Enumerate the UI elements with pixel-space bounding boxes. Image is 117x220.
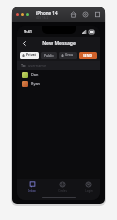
staticText: Circles — [58, 189, 67, 193]
staticText: SEND — [83, 53, 93, 58]
button[interactable]: Settings — [82, 11, 89, 18]
button[interactable]: Back — [20, 39, 29, 48]
staticText: Inbox — [28, 189, 36, 193]
staticText: New Message — [42, 40, 76, 47]
button[interactable]: Zoom window — [26, 13, 29, 16]
staticText: 9:41 — [24, 29, 32, 34]
button[interactable]: Inbox — [17, 179, 47, 195]
staticText: Dan — [31, 72, 39, 77]
button[interactable]: Login — [77, 179, 100, 195]
staticText: To: — [21, 63, 28, 68]
button[interactable]: Ryan — [17, 79, 100, 88]
staticText: Ryan — [31, 81, 40, 86]
staticText: iPhone 14 — [36, 10, 58, 16]
staticText: Login — [85, 189, 93, 193]
button[interactable]: Screenshot — [94, 11, 101, 18]
button[interactable]: Group — [61, 52, 75, 59]
staticText: Public — [44, 53, 54, 58]
button[interactable]: Home — [70, 11, 77, 18]
button[interactable]: Circles — [47, 179, 77, 195]
staticText: iOS 16.2 — [36, 16, 49, 20]
button[interactable]: Public — [43, 52, 55, 59]
button[interactable]: SEND — [79, 52, 97, 59]
button[interactable]: Dan — [17, 70, 100, 79]
staticText: Group — [65, 52, 75, 59]
button[interactable]: Private — [22, 52, 37, 59]
staticText: username — [28, 63, 47, 68]
button[interactable]: Minimize window — [21, 13, 24, 16]
button[interactable]: Close window — [16, 13, 19, 16]
button[interactable]: To: — [17, 61, 100, 70]
staticText: Private — [26, 52, 37, 59]
